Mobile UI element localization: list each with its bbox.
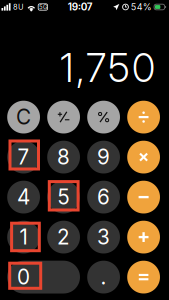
staticText: 7 bbox=[18, 145, 30, 170]
staticText: 4 bbox=[17, 185, 30, 210]
staticText: 8 bbox=[57, 145, 70, 170]
button[interactable]: Equals bbox=[127, 261, 160, 293]
staticText: . bbox=[101, 265, 107, 290]
staticText: 5G bbox=[39, 3, 47, 11]
staticText: 1,750 bbox=[60, 45, 155, 91]
button[interactable]: Multiply bbox=[127, 141, 160, 173]
button[interactable]: . bbox=[87, 261, 120, 293]
staticText: 1 bbox=[20, 225, 28, 250]
button[interactable]: Percent bbox=[87, 101, 120, 133]
button[interactable]: 9 bbox=[87, 141, 120, 173]
staticText: 19:07 bbox=[68, 1, 93, 13]
button[interactable]: 8 bbox=[47, 141, 80, 173]
button[interactable]: Divide bbox=[127, 101, 160, 133]
button[interactable]: 5 bbox=[47, 181, 80, 213]
button[interactable]: 3 bbox=[87, 221, 120, 253]
button[interactable]: Add bbox=[127, 221, 160, 253]
button[interactable]: 4 bbox=[7, 181, 40, 213]
button[interactable]: 1 bbox=[7, 221, 40, 253]
button[interactable]: C bbox=[7, 101, 40, 133]
staticText: 8U bbox=[13, 2, 24, 11]
button[interactable]: 2 bbox=[47, 221, 80, 253]
button[interactable]: 6 bbox=[87, 181, 120, 213]
staticText: C bbox=[16, 105, 31, 130]
button[interactable]: 0 bbox=[7, 261, 80, 293]
button[interactable]: 7 bbox=[7, 141, 40, 173]
button[interactable]: Subtract bbox=[127, 181, 160, 213]
staticText: 3 bbox=[97, 225, 110, 250]
staticText: 5 bbox=[58, 185, 70, 210]
button[interactable]: Toggle sign bbox=[47, 101, 80, 133]
staticText: 6 bbox=[97, 185, 110, 210]
staticText: 2 bbox=[57, 225, 70, 250]
staticText: 0 bbox=[17, 265, 30, 290]
staticText: 54% bbox=[131, 1, 152, 12]
staticText: 9 bbox=[97, 145, 110, 170]
